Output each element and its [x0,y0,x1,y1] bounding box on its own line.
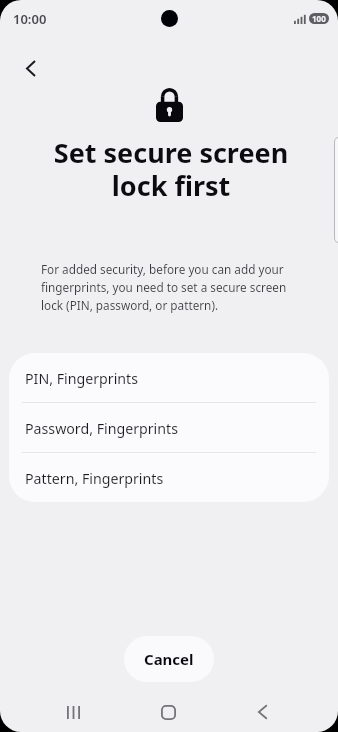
button[interactable]: Pattern, Fingerprints [9,453,329,502]
button[interactable]: Back [12,50,49,87]
staticText: Set secure screen lock first [22,134,320,203]
staticText: 100 [312,13,326,24]
staticText: Password, Fingerprints [25,419,178,438]
staticText: Cancel [144,649,194,669]
staticText: For added security, before you can add y… [41,261,293,314]
staticText: PIN, Fingerprints [25,369,138,388]
button[interactable]: PIN, Fingerprints [9,353,329,402]
button[interactable]: Home [144,690,192,732]
staticText: Pattern, Fingerprints [25,469,164,488]
button[interactable]: Password, Fingerprints [9,403,329,452]
button[interactable]: Back [238,690,286,732]
button[interactable]: Recent apps [49,690,97,732]
button[interactable]: Cancel [124,636,214,682]
staticText: 10:00 [13,10,47,28]
button[interactable]: Edge panel [335,138,338,242]
